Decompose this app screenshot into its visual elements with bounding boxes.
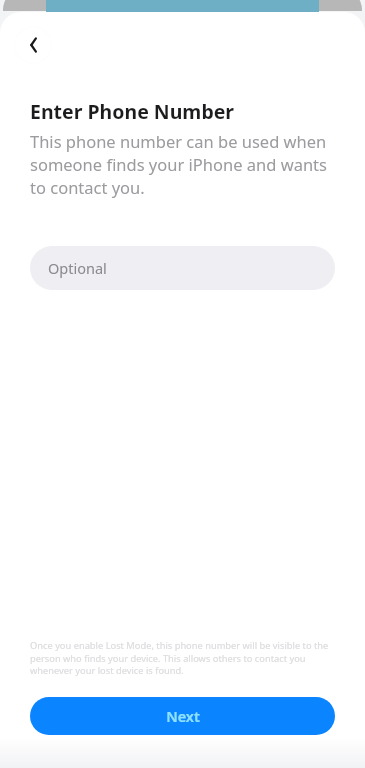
staticText: This phone number can be used when someo… xyxy=(30,130,339,199)
button[interactable]: Next xyxy=(30,697,335,735)
staticText: Once you enable Lost Mode, this phone nu… xyxy=(30,639,339,676)
staticText: Enter Phone Number xyxy=(30,98,235,125)
button[interactable]: Optional xyxy=(30,246,335,290)
staticText: Next xyxy=(166,706,200,726)
staticText: Optional xyxy=(48,258,107,278)
button[interactable]: Back xyxy=(14,26,52,64)
